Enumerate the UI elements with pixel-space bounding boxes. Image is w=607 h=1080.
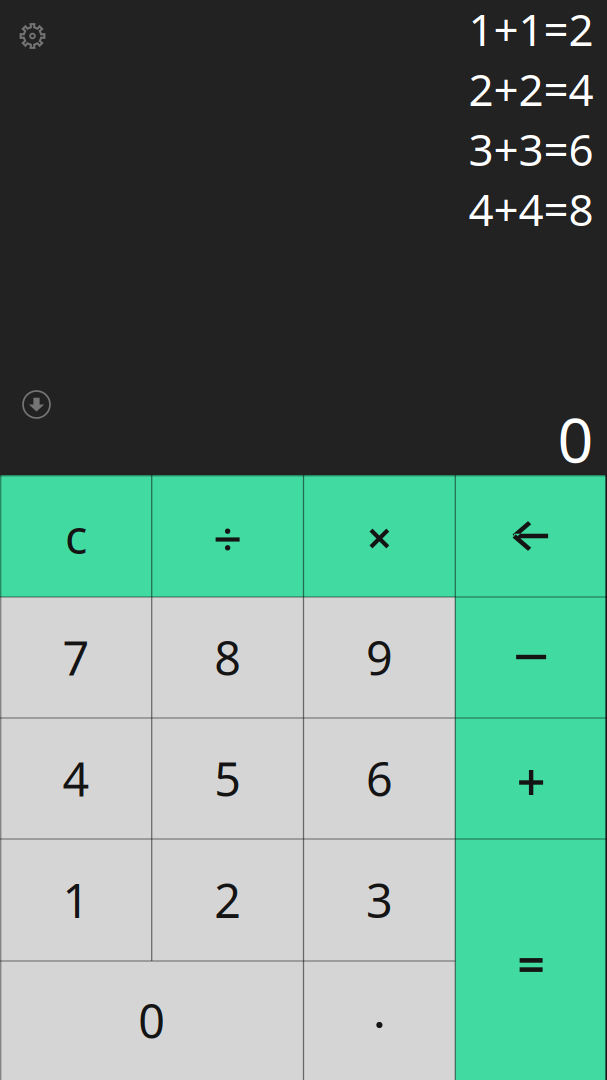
staticText: 0	[557, 397, 593, 480]
button[interactable]: Decimal point	[303, 961, 455, 1080]
staticText: 3	[366, 869, 393, 931]
staticText: 4	[62, 747, 89, 809]
button[interactable]: 7	[0, 597, 152, 718]
button[interactable]: Minus	[455, 597, 607, 718]
button[interactable]: 4	[0, 718, 152, 839]
button[interactable]: 5	[152, 718, 304, 839]
button[interactable]: Equals	[455, 839, 607, 1080]
button[interactable]: 2	[152, 839, 304, 961]
staticText: 3+3=6	[468, 120, 593, 178]
button[interactable]: 9	[303, 597, 455, 718]
button[interactable]: Divide	[152, 475, 304, 597]
button[interactable]: Plus	[455, 718, 607, 839]
staticText: 9	[366, 626, 393, 688]
button[interactable]: Multiply	[303, 475, 455, 597]
staticText: 1	[62, 869, 89, 931]
button[interactable]: 6	[303, 718, 455, 839]
staticText: 2	[214, 869, 241, 931]
button[interactable]: Clear	[0, 475, 152, 597]
staticText: 6	[366, 747, 393, 809]
staticText: 8	[214, 626, 241, 688]
staticText: 4+4=8	[468, 180, 593, 238]
staticText: 5	[214, 747, 241, 809]
staticText: 2+2=4	[468, 60, 593, 118]
staticText: 7	[62, 626, 89, 688]
button[interactable]: 0	[0, 961, 303, 1080]
button[interactable]: Save history	[16, 384, 57, 425]
staticText: 0	[138, 989, 165, 1051]
button[interactable]: Backspace	[455, 475, 607, 597]
staticText: 1+1=2	[468, 0, 593, 58]
button[interactable]: 8	[152, 597, 304, 718]
button[interactable]: 3	[303, 839, 455, 961]
button[interactable]: Settings	[11, 14, 54, 57]
button[interactable]: 1	[0, 839, 152, 961]
staticText: c	[65, 505, 87, 567]
